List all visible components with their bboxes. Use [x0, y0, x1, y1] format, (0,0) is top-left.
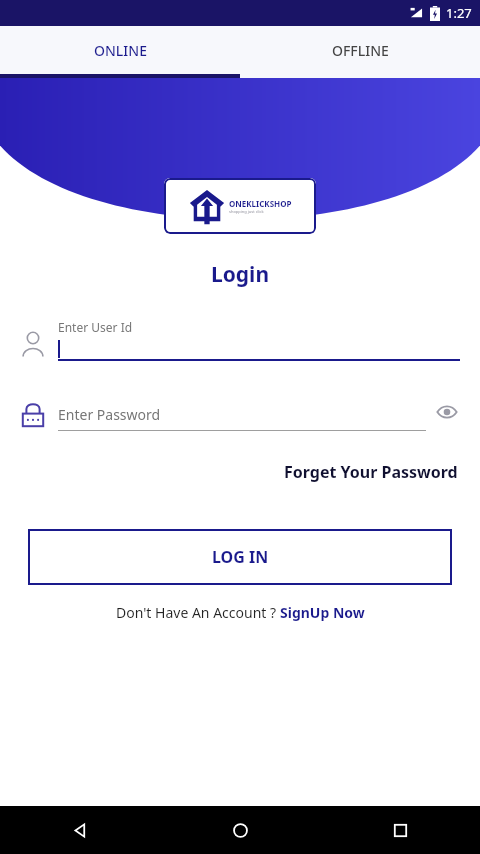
button[interactable]: OneKlickShop logo: [164, 178, 316, 234]
staticText: Enter Password: [58, 405, 161, 424]
staticText: Don't Have An Account ?: [116, 603, 280, 622]
staticText: ONEKLICKSHOP: [229, 198, 292, 209]
button[interactable]: LOG IN: [28, 529, 452, 585]
button[interactable]: Recent apps: [320, 806, 480, 854]
staticText: LOG IN: [212, 546, 269, 568]
staticText: Forget Your Password: [284, 461, 458, 483]
button[interactable]: Home: [160, 806, 320, 854]
button[interactable]: ONLINE: [0, 26, 240, 74]
button[interactable]: OFFLINE: [240, 26, 480, 74]
button[interactable]: SignUp Now: [280, 603, 365, 622]
button[interactable]: Back: [0, 806, 160, 854]
staticText: OFFLINE: [332, 41, 389, 60]
staticText: ONLINE: [94, 41, 147, 60]
button[interactable]: Forget Your Password: [280, 457, 462, 487]
staticText: SignUp Now: [280, 603, 365, 622]
button[interactable]: Show password: [434, 399, 460, 425]
staticText: shopping just click: [229, 209, 264, 214]
staticText: Enter User Id: [58, 319, 133, 335]
staticText: 1:27: [446, 4, 472, 22]
button[interactable]: Enter Password: [18, 401, 460, 431]
button[interactable]: Enter User Id: [18, 319, 460, 361]
staticText: Login: [0, 260, 480, 289]
